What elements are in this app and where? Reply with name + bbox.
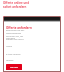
staticText: sofort anfordern [3,5,27,9]
staticText: Vorname [6,37,15,40]
staticText: Bitte fullen Sie das untenstehende Formu… [6,29,29,41]
staticText: E-Mail Adresse [6,53,21,56]
staticText: Name [6,45,12,48]
button[interactable]: Senden [6,64,22,70]
staticText: Offerte online und [3,1,30,5]
staticText: Offerte anfordern [6,26,32,30]
staticText: Senden [10,66,19,69]
staticText: Telefon [6,59,14,62]
